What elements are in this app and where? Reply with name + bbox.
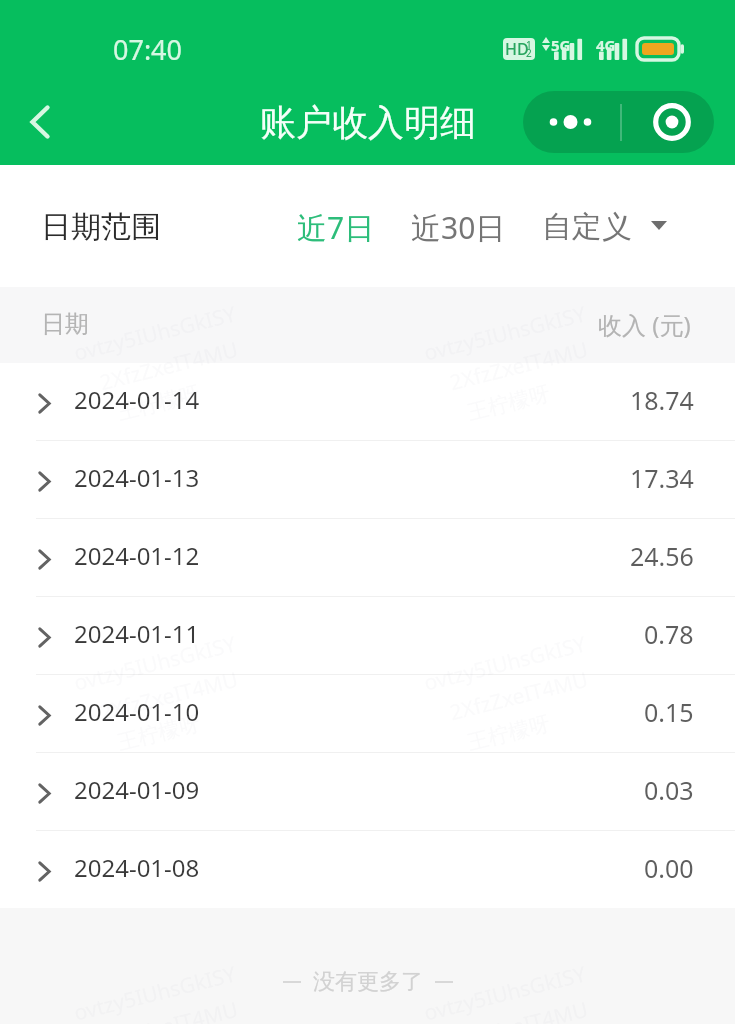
staticText: 1 — [526, 38, 532, 52]
staticText: 2XfzZxeIT4MU — [97, 665, 242, 727]
staticText: 王柠檬呀 — [115, 710, 203, 756]
staticText: 2XfzZxeIT4MU — [97, 335, 242, 397]
staticText: 2024-01-14 — [74, 383, 200, 416]
button[interactable]: 自定义 — [542, 207, 667, 245]
button[interactable]: 2024-01-09 — [0, 753, 735, 830]
staticText: 4G — [596, 35, 616, 55]
button[interactable]: Back — [3, 85, 77, 159]
staticText: 2024-01-13 — [74, 461, 200, 494]
staticText: 2024-01-11 — [74, 617, 200, 650]
staticText: 07:40 — [113, 31, 183, 68]
staticText: 没有更多了 — [313, 968, 423, 996]
button[interactable]: 近30日 — [411, 206, 506, 247]
staticText: 近7日 — [297, 207, 375, 248]
staticText: 5G — [551, 35, 571, 55]
staticText: ovtzy5IUhsGkISY — [71, 299, 239, 368]
staticText: 0.00 — [644, 851, 694, 885]
staticText: 日期范围 — [41, 208, 161, 246]
staticText: 17.34 — [630, 461, 694, 495]
button[interactable]: 2024-01-12 — [0, 519, 735, 596]
staticText: 0.03 — [644, 773, 694, 807]
staticText: 2024-01-08 — [74, 851, 200, 884]
staticText: 18.74 — [630, 383, 694, 417]
staticText: 2 — [526, 46, 532, 60]
button[interactable]: 2024-01-14 — [0, 363, 735, 440]
button[interactable]: 2024-01-13 — [0, 441, 735, 518]
button[interactable]: 近7日 — [297, 206, 375, 247]
button[interactable]: More options — [523, 91, 714, 153]
staticText: 账户收入明细 — [260, 100, 476, 145]
staticText: 24.56 — [630, 539, 694, 573]
staticText: 收入 (元) — [598, 308, 691, 341]
staticText: 王柠檬呀 — [115, 380, 203, 426]
staticText: 0.15 — [644, 695, 694, 729]
staticText: ovtzy5IUhsGkISY — [71, 629, 239, 698]
staticText: 自定义 — [542, 208, 632, 246]
staticText: 2XfzZxeIT4MU — [447, 335, 592, 397]
button[interactable]: 2024-01-11 — [0, 597, 735, 674]
staticText: 日期 — [41, 309, 89, 339]
staticText: 近30日 — [411, 207, 506, 248]
button[interactable]: 2024-01-08 — [0, 831, 735, 908]
staticText: 2024-01-09 — [74, 773, 200, 806]
staticText: 2024-01-10 — [74, 695, 200, 728]
staticText: 2024-01-12 — [74, 539, 200, 572]
button[interactable]: 2024-01-10 — [0, 675, 735, 752]
staticText: HD — [505, 38, 529, 60]
staticText: 0.78 — [644, 617, 694, 651]
